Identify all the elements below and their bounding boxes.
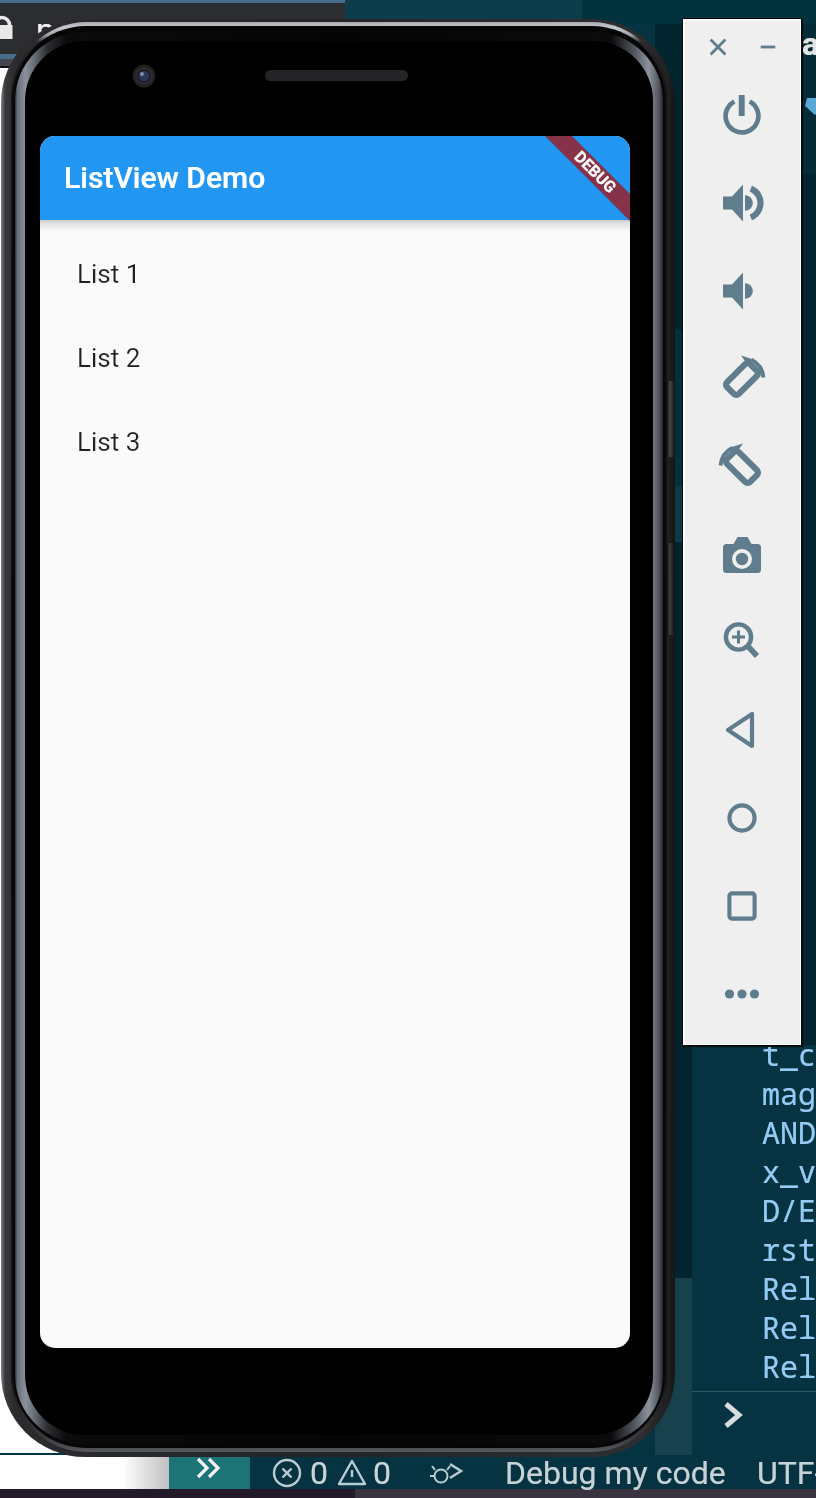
staticText: D/E — [762, 1190, 816, 1231]
staticText: x_v — [762, 1151, 816, 1192]
staticText: List 3 — [77, 427, 141, 457]
button[interactable]: Volume down — [714, 263, 770, 319]
staticText: Debug my code — [505, 1454, 726, 1492]
button[interactable]: Close emulator — [700, 29, 736, 65]
staticText: List 1 — [77, 259, 141, 289]
staticText: AND — [762, 1112, 816, 1153]
staticText: ai — [802, 25, 816, 63]
button[interactable]: Back — [714, 702, 770, 758]
staticText: 0 — [310, 1454, 328, 1492]
button[interactable]: List 2 — [40, 316, 630, 400]
staticText: rst — [762, 1229, 816, 1270]
button[interactable]: Take screenshot — [714, 527, 770, 583]
staticText: Rel — [762, 1307, 816, 1348]
button[interactable]: Minimize — [750, 29, 786, 65]
staticText: mag — [762, 1073, 816, 1114]
button[interactable]: List 3 — [40, 400, 630, 484]
button[interactable]: Power — [714, 88, 770, 144]
staticText: 0 — [373, 1454, 391, 1492]
staticText: Rel — [762, 1268, 816, 1309]
staticText: Rel — [762, 1346, 816, 1387]
staticText: t_c — [762, 1034, 816, 1075]
button[interactable]: Rotate left — [714, 351, 770, 407]
button[interactable]: Zoom — [714, 614, 770, 670]
staticText: List 2 — [77, 343, 141, 373]
button[interactable]: More — [714, 966, 770, 1022]
staticText: UTF- — [757, 1454, 816, 1492]
button[interactable]: Home — [714, 790, 770, 846]
staticText: pu — [36, 10, 74, 50]
button[interactable]: Volume up — [714, 175, 770, 231]
button[interactable]: List 1 — [40, 232, 630, 316]
button[interactable]: Rotate right — [714, 439, 770, 495]
button[interactable]: Overview — [714, 878, 770, 934]
staticText: DEBUG — [570, 147, 621, 197]
staticText: ListView Demo — [64, 160, 266, 195]
